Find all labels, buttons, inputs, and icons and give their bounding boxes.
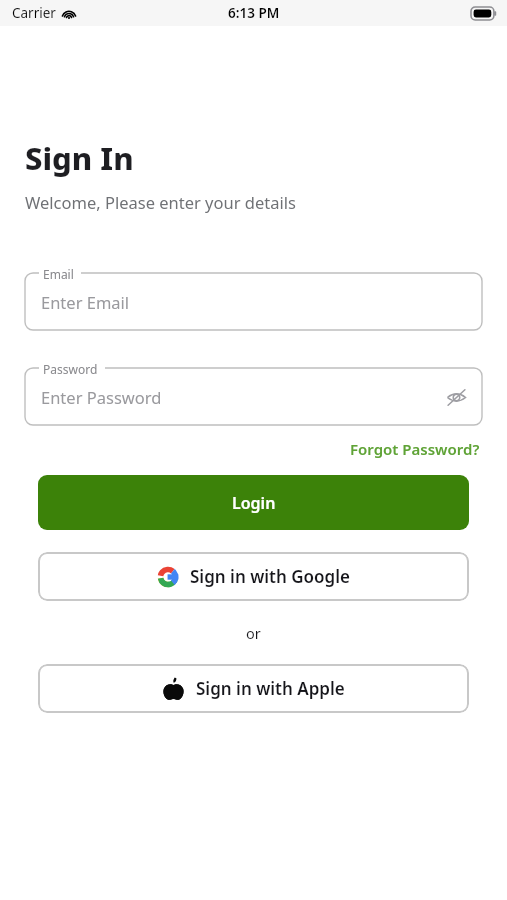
staticText: Sign In [25, 137, 134, 179]
button[interactable]: Enter Password [25, 368, 482, 425]
staticText: Carrier [12, 4, 56, 22]
staticText: Login [232, 492, 276, 514]
button[interactable]: Enter Email [25, 273, 482, 330]
staticText: 6:13 PM [228, 4, 280, 22]
button[interactable]: Show password [442, 383, 470, 411]
staticText: Welcome, Please enter your details [25, 191, 296, 213]
staticText: Email [43, 266, 74, 282]
staticText: Forgot Password? [350, 439, 480, 459]
button[interactable]: Sign in with Apple [38, 664, 469, 713]
staticText: or [246, 623, 261, 643]
staticText: Enter Email [41, 291, 130, 313]
staticText: Sign in with Google [190, 565, 350, 588]
button[interactable]: Sign in with Google [38, 552, 469, 601]
staticText: Password [43, 361, 98, 377]
staticText: Enter Password [41, 386, 162, 408]
staticText: Sign in with Apple [196, 677, 345, 700]
button[interactable]: Forgot Password? [348, 437, 482, 461]
button[interactable]: Login [38, 475, 469, 530]
